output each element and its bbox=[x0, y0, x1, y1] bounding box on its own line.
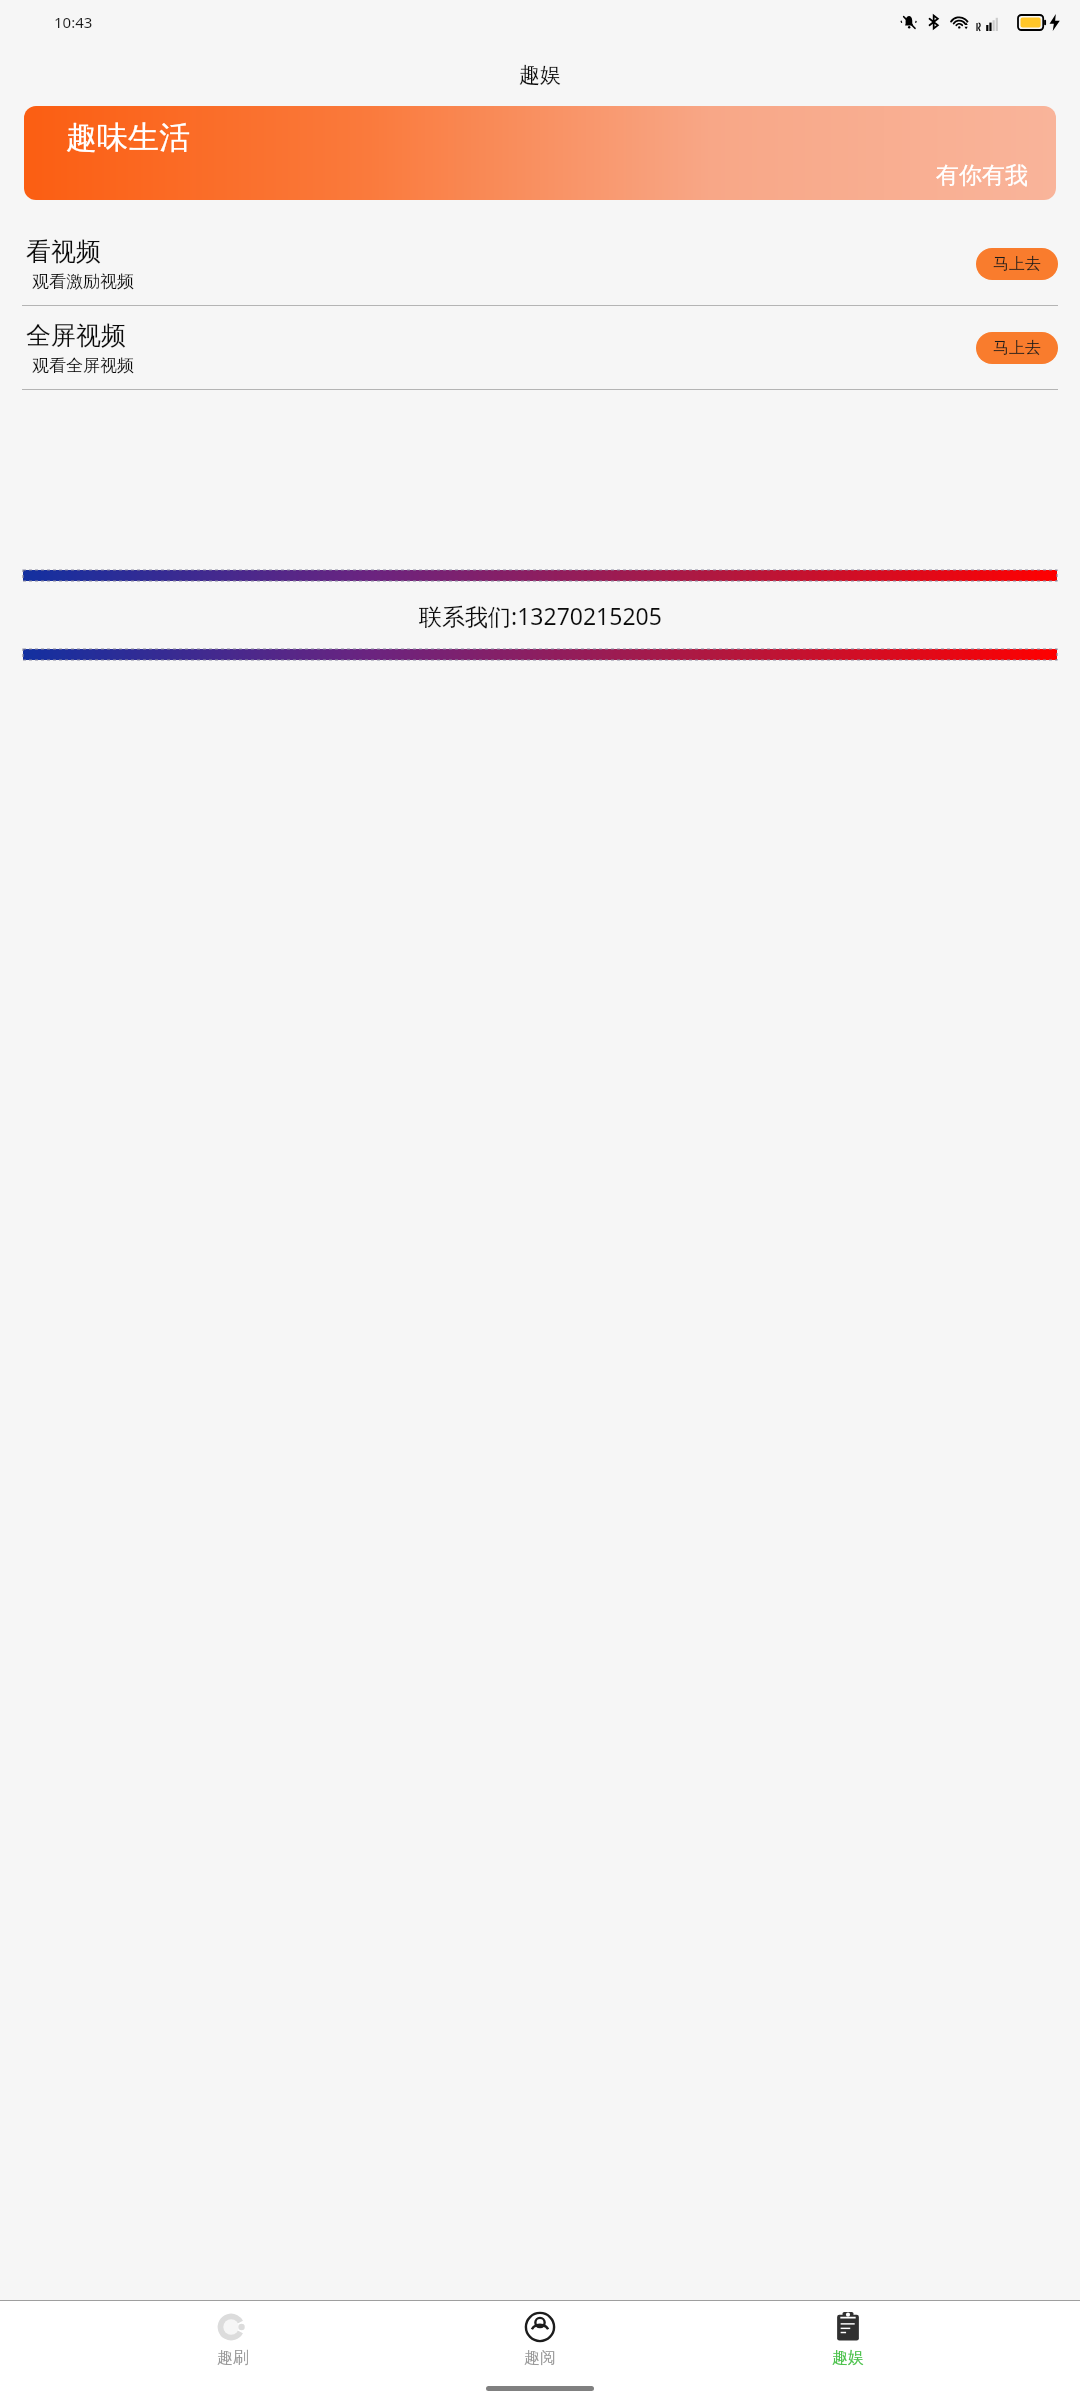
staticText: 趣阅 bbox=[524, 2348, 556, 2368]
button[interactable]: 趣刷 bbox=[158, 2311, 308, 2368]
staticText: 10:43 bbox=[54, 12, 93, 32]
button[interactable]: 看视频 bbox=[0, 222, 1080, 305]
staticText: 观看激励视频 bbox=[32, 271, 134, 292]
staticText: 趣娱 bbox=[832, 2348, 864, 2368]
staticText: 全屏视频 bbox=[26, 320, 126, 351]
staticText: 观看全屏视频 bbox=[32, 355, 134, 376]
button[interactable]: 马上去 bbox=[976, 332, 1058, 364]
button[interactable]: 马上去 bbox=[976, 248, 1058, 280]
button[interactable]: 趣味生活 bbox=[24, 106, 1056, 200]
staticText: 马上去 bbox=[993, 254, 1041, 274]
button[interactable]: 趣娱 bbox=[773, 2311, 923, 2368]
button[interactable]: 趣阅 bbox=[465, 2311, 615, 2368]
staticText: 有你有我 bbox=[936, 161, 1028, 190]
staticText: 马上去 bbox=[993, 338, 1041, 358]
staticText: 趣味生活 bbox=[66, 118, 190, 157]
staticText: 看视频 bbox=[26, 236, 101, 267]
button[interactable]: 全屏视频 bbox=[0, 306, 1080, 389]
staticText: 趣娱 bbox=[519, 62, 561, 88]
staticText: 联系我们:13270215205 bbox=[419, 600, 662, 631]
staticText: 趣刷 bbox=[217, 2348, 249, 2368]
